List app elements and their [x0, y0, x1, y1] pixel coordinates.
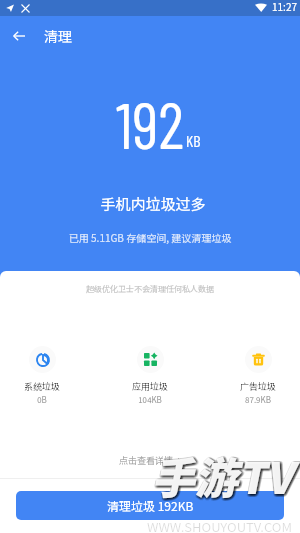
staticText: 超级优化卫士不会清理任何私人数据 — [0, 283, 300, 295]
staticText: 104KB — [124, 394, 176, 406]
staticText: KB — [186, 131, 201, 150]
button[interactable]: Back — [0, 16, 40, 56]
button[interactable]: 广告垃圾 — [232, 346, 284, 406]
button[interactable]: 清理垃圾 192KB — [16, 491, 284, 520]
staticText: 清理 — [44, 26, 72, 46]
staticText: 手机内垃圾过多 — [3, 193, 300, 215]
button[interactable]: 点击查看详情 — [111, 450, 190, 471]
staticText: 11:27 — [272, 0, 297, 13]
staticText: 0B — [16, 394, 68, 406]
staticText: 点击查看详情 — [119, 454, 174, 467]
button[interactable]: 应用垃圾 — [124, 346, 176, 406]
staticText: 系统垃圾 — [16, 380, 68, 393]
staticText: 清理垃圾 192KB — [107, 497, 194, 514]
staticText: 已用 5.11GB 存储空间, 建议清理垃圾 — [0, 230, 300, 244]
staticText: 应用垃圾 — [124, 380, 176, 393]
staticText: 192 — [116, 85, 184, 162]
staticText: 广告垃圾 — [232, 380, 284, 393]
button[interactable]: 系统垃圾 — [16, 346, 68, 406]
staticText: 87.9KB — [232, 394, 284, 406]
